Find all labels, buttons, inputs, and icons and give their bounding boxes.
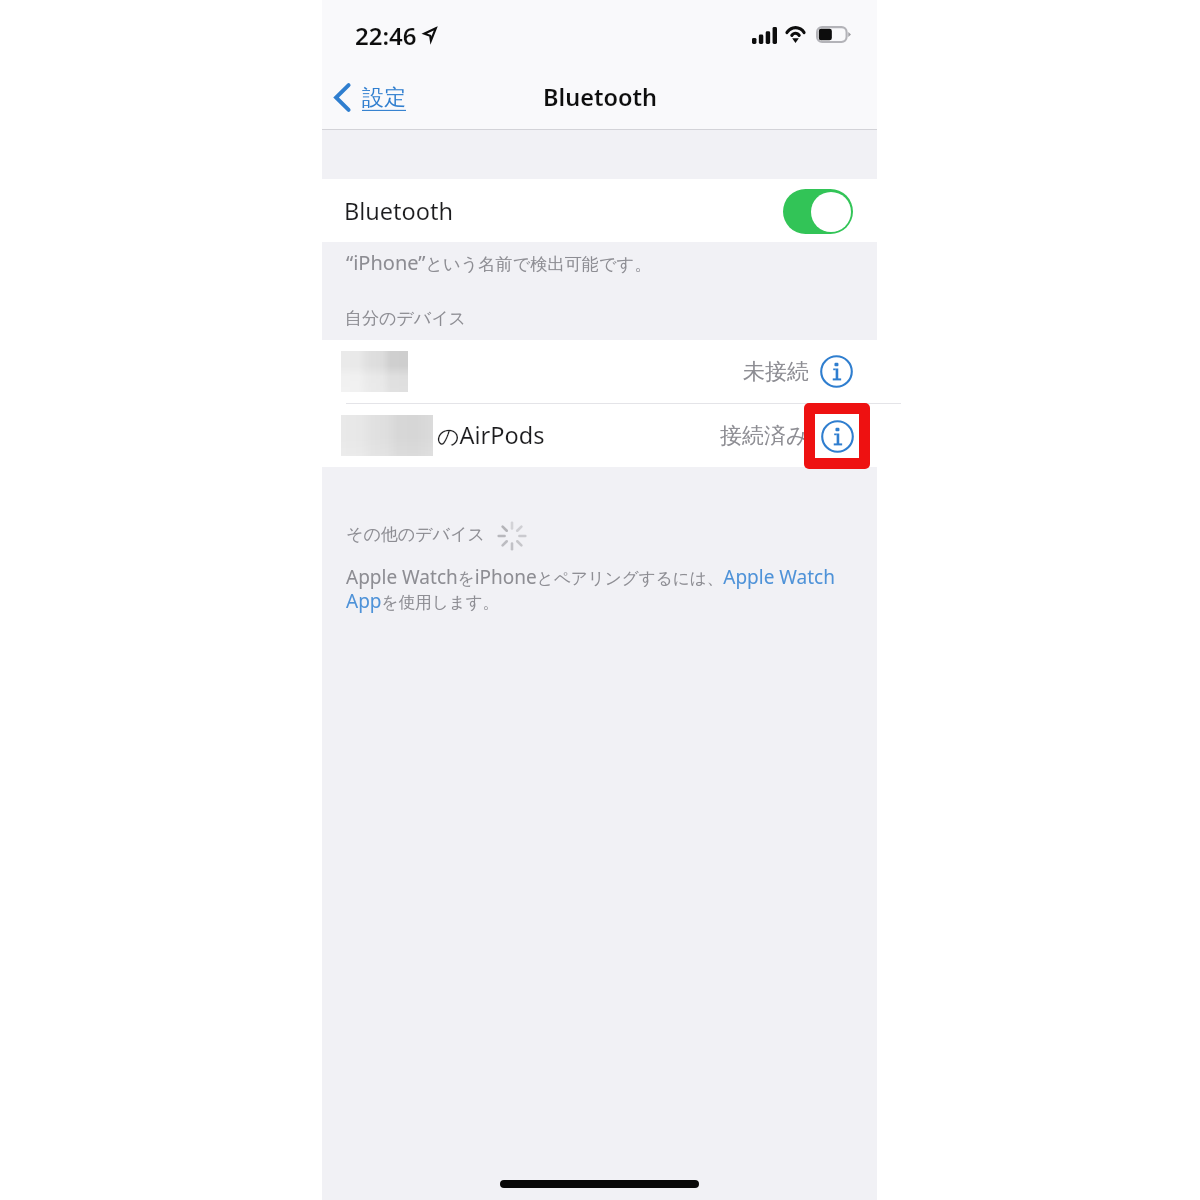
button[interactable]: 未接続 (322, 340, 877, 403)
staticText: その他のデバイス (346, 524, 485, 545)
staticText: Apple WatchをiPhoneとペアリングするには、Apple Watch… (346, 564, 871, 614)
button[interactable]: Bluetooth toggle (783, 189, 853, 234)
button[interactable]: 設定 (330, 75, 410, 120)
button[interactable]: More info (822, 421, 853, 452)
button[interactable]: Apple Watch App (722, 565, 834, 589)
staticText: 自分のデバイス (345, 308, 466, 329)
staticText: のAirPods (437, 419, 545, 451)
staticText: 未接続 (743, 358, 809, 386)
button[interactable]: More info (821, 356, 852, 387)
staticText: Bluetooth (344, 195, 454, 227)
button[interactable]: のAirPods (322, 404, 877, 467)
button[interactable]: AirPods device info (804, 403, 870, 469)
button[interactable]: Apple Watch App (346, 589, 386, 613)
button[interactable]: Bluetooth (322, 179, 877, 242)
staticText: “iPhone”という名前で検出可能です。 (346, 249, 652, 276)
staticText: 22:46 (355, 19, 417, 52)
staticText: 接続済み (720, 422, 809, 450)
staticText: 設定 (362, 84, 406, 112)
staticText: Bluetooth (543, 81, 657, 113)
button[interactable]: More info (821, 420, 852, 451)
